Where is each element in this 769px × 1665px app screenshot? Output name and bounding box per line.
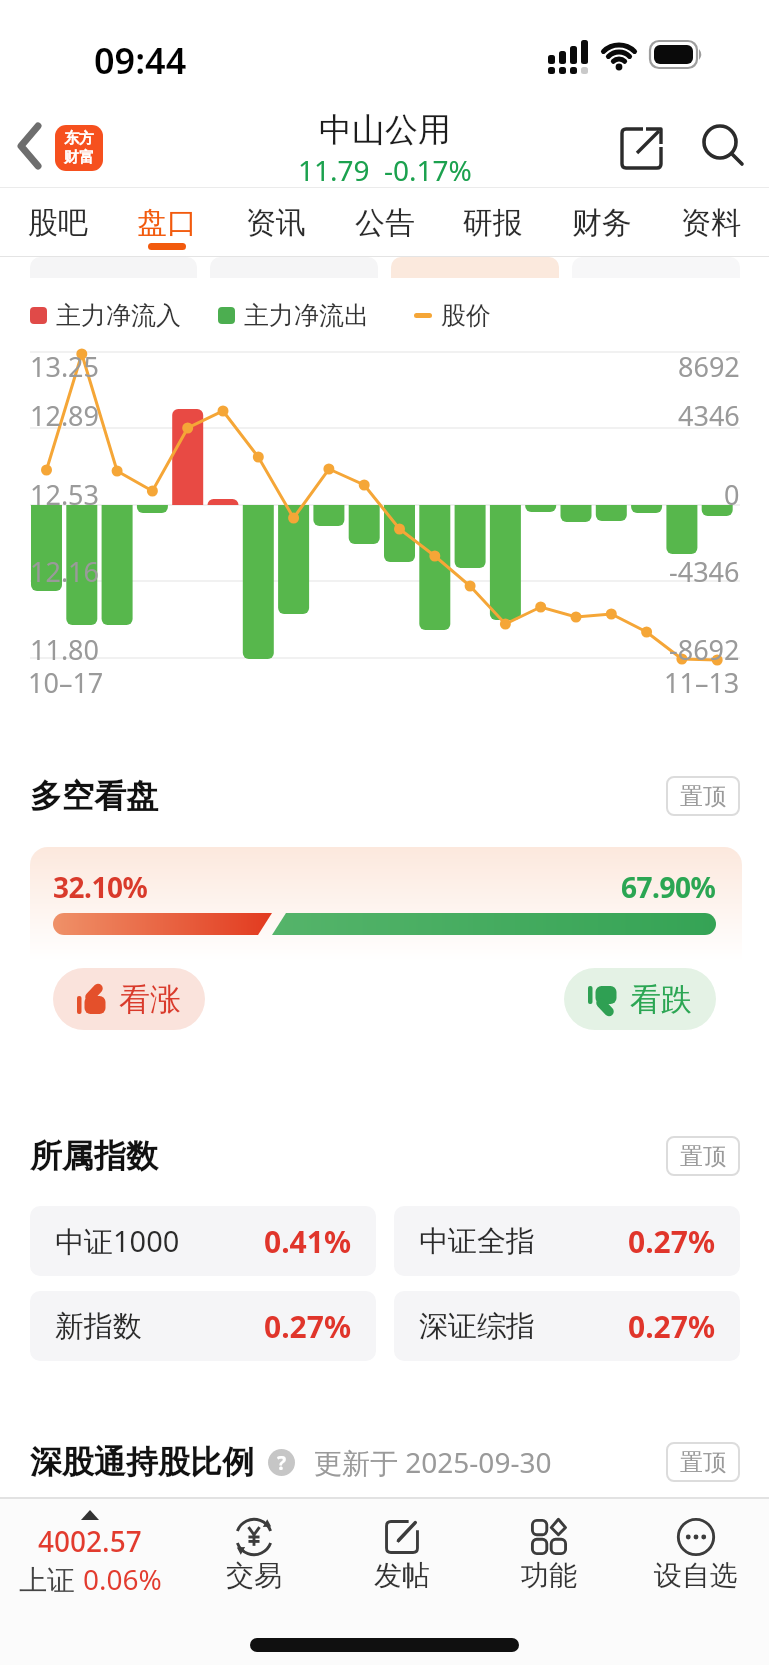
staticText: 多空看盘 bbox=[30, 776, 158, 816]
button[interactable]: 4002.57 bbox=[0, 1497, 180, 1665]
button[interactable]: 公告 bbox=[355, 188, 415, 257]
button[interactable]: 新指数 bbox=[30, 1291, 376, 1361]
staticText: 公告 bbox=[355, 204, 415, 242]
button[interactable]: 发帖 bbox=[328, 1497, 475, 1665]
staticText: 深证综指 bbox=[419, 1308, 535, 1345]
button[interactable]: 股吧 bbox=[28, 188, 88, 257]
staticText: 更新于 2025-09-30 bbox=[314, 1443, 552, 1481]
staticText: 10–17 bbox=[28, 664, 104, 701]
staticText: 所属指数 bbox=[30, 1136, 158, 1176]
staticText: 盘口 bbox=[137, 204, 197, 242]
staticText: 设自选 bbox=[654, 1558, 738, 1593]
button[interactable] bbox=[391, 257, 559, 278]
staticText: 12.16 bbox=[30, 553, 100, 590]
staticText: 09:44 bbox=[94, 36, 187, 85]
staticText: 11–13 bbox=[664, 664, 740, 701]
staticText: 置顶 bbox=[680, 782, 726, 811]
staticText: 看涨 bbox=[119, 980, 181, 1019]
button[interactable]: 置顶 bbox=[666, 1136, 740, 1176]
button[interactable]: 财务 bbox=[572, 188, 632, 257]
button[interactable]: 资讯 bbox=[246, 188, 306, 257]
staticText: 东方 bbox=[64, 129, 94, 148]
staticText: 13.25 bbox=[30, 348, 100, 385]
staticText: -8692 bbox=[669, 631, 740, 668]
staticText: 中证全指 bbox=[419, 1223, 535, 1260]
staticText: 财务 bbox=[572, 204, 632, 242]
staticText: 资料 bbox=[681, 204, 741, 242]
staticText: 12.53 bbox=[30, 476, 100, 513]
staticText: 0.27% bbox=[628, 1221, 715, 1262]
staticText: 11.79 bbox=[298, 151, 370, 189]
button[interactable] bbox=[8, 114, 56, 174]
button[interactable]: 置顶 bbox=[666, 1442, 740, 1482]
staticText: 主力净流出 bbox=[244, 300, 369, 331]
button[interactable]: 看涨 bbox=[53, 968, 205, 1030]
staticText: 0.27% bbox=[628, 1306, 715, 1347]
staticText: 中证1000 bbox=[55, 1221, 180, 1261]
staticText: 置顶 bbox=[680, 1142, 726, 1171]
staticText: 12.89 bbox=[30, 397, 100, 434]
button[interactable] bbox=[698, 120, 752, 174]
staticText: 0.41% bbox=[264, 1221, 351, 1262]
staticText: 深股通持股比例 bbox=[30, 1442, 254, 1482]
staticText: 0.06% bbox=[83, 1560, 162, 1598]
staticText: 财富 bbox=[64, 148, 94, 167]
staticText: 4002.57 bbox=[38, 1522, 142, 1560]
button[interactable] bbox=[612, 118, 670, 176]
staticText: 置顶 bbox=[680, 1448, 726, 1477]
staticText: 8692 bbox=[678, 348, 740, 385]
staticText: 研报 bbox=[463, 204, 523, 242]
staticText: 67.90% bbox=[621, 868, 716, 906]
staticText: 32.10% bbox=[53, 868, 148, 906]
button[interactable]: 看跌 bbox=[564, 968, 716, 1030]
staticText: 交易 bbox=[226, 1558, 282, 1593]
button[interactable]: 中证1000 bbox=[30, 1206, 376, 1276]
button[interactable]: 中证全指 bbox=[394, 1206, 740, 1276]
staticText: 中山公用 bbox=[319, 109, 451, 151]
staticText: 股价 bbox=[441, 300, 491, 331]
button[interactable]: 深证综指 bbox=[394, 1291, 740, 1361]
staticText: 4346 bbox=[678, 397, 740, 434]
staticText: 股吧 bbox=[28, 204, 88, 242]
staticText: ? bbox=[277, 1450, 287, 1476]
button[interactable]: 东方 bbox=[55, 125, 103, 171]
button[interactable]: 功能 bbox=[475, 1497, 622, 1665]
staticText: 看跌 bbox=[630, 980, 692, 1019]
staticText: 0 bbox=[724, 476, 740, 513]
button[interactable]: 盘口 bbox=[137, 188, 197, 257]
staticText: 11.80 bbox=[30, 631, 100, 668]
button[interactable]: 研报 bbox=[463, 188, 523, 257]
button[interactable]: 置顶 bbox=[666, 776, 740, 816]
staticText: -0.17% bbox=[384, 151, 472, 189]
staticText: 新指数 bbox=[55, 1308, 142, 1345]
staticText: 0.27% bbox=[264, 1306, 351, 1347]
staticText: 资讯 bbox=[246, 204, 306, 242]
staticText: 上证 bbox=[19, 1560, 83, 1598]
staticText: 发帖 bbox=[374, 1558, 430, 1593]
staticText: 功能 bbox=[521, 1558, 577, 1593]
staticText: 主力净流入 bbox=[56, 300, 181, 331]
button[interactable]: 资料 bbox=[681, 188, 741, 257]
button[interactable]: 设自选 bbox=[622, 1497, 769, 1665]
button[interactable]: 交易 bbox=[180, 1497, 328, 1665]
staticText: -4346 bbox=[669, 553, 740, 590]
